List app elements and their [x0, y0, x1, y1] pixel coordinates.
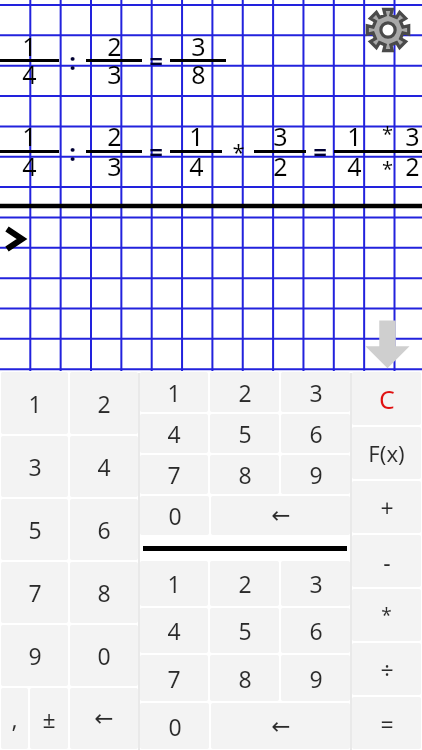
button[interactable]: 3 — [281, 372, 350, 412]
button[interactable]: 9 — [1, 625, 68, 686]
staticText: * — [232, 136, 245, 166]
staticText: 3 — [309, 377, 323, 408]
staticText: 1 — [167, 568, 181, 599]
staticText: 4 — [189, 149, 204, 183]
button[interactable]: 2 — [210, 372, 279, 412]
button[interactable]: 2 — [70, 372, 138, 434]
staticText: 1 — [22, 29, 37, 63]
staticText: 2 — [107, 119, 122, 153]
staticText: * — [382, 120, 394, 147]
button[interactable]: 3 — [281, 561, 350, 606]
button[interactable]: 5 — [1, 499, 68, 560]
staticText: * — [382, 155, 394, 182]
button[interactable]: 7 — [1, 562, 68, 623]
button[interactable]: - — [352, 535, 421, 587]
staticText: 3 — [107, 57, 122, 91]
staticText: 3 — [405, 119, 420, 153]
staticText: 1 — [347, 119, 362, 153]
button[interactable]: ± — [30, 688, 68, 749]
staticText: 7 — [167, 663, 181, 694]
staticText: ← — [94, 705, 114, 732]
staticText: 3 — [309, 568, 323, 599]
staticText: 4 — [97, 451, 111, 482]
button[interactable]: 6 — [281, 608, 350, 653]
button[interactable]: 7 — [140, 455, 208, 494]
staticText: 4 — [167, 418, 181, 449]
button[interactable]: 1 — [140, 372, 208, 412]
staticText: 0 — [168, 711, 182, 742]
staticText: 5 — [238, 418, 252, 449]
button[interactable]: 3 — [1, 436, 68, 497]
button[interactable]: , — [1, 688, 28, 749]
staticText: 1 — [22, 119, 37, 153]
staticText: 4 — [347, 149, 362, 183]
button[interactable]: 4 — [140, 608, 208, 653]
button[interactable]: Scroll down — [360, 316, 415, 371]
button[interactable]: Backspace — [70, 688, 138, 749]
staticText: , — [11, 703, 18, 734]
button[interactable]: 9 — [281, 455, 350, 494]
button[interactable]: 4 — [70, 436, 138, 497]
staticText: 9 — [309, 459, 323, 490]
button[interactable]: 5 — [210, 414, 279, 453]
button[interactable]: = — [352, 697, 421, 749]
button[interactable]: Settings — [362, 4, 414, 56]
staticText: 8 — [97, 577, 111, 608]
staticText: 2 — [405, 149, 420, 183]
staticText: : — [69, 44, 76, 77]
button[interactable]: 6 — [70, 499, 138, 560]
staticText: 5 — [28, 514, 42, 545]
button[interactable]: 5 — [210, 608, 279, 653]
staticText: C — [379, 382, 395, 416]
button[interactable]: 1 — [1, 372, 68, 434]
button[interactable]: C — [352, 372, 421, 425]
button[interactable]: * — [352, 589, 421, 641]
button[interactable]: 0 — [140, 703, 209, 749]
staticText: ← — [271, 713, 291, 740]
staticText: 3 — [191, 29, 206, 63]
staticText: 7 — [28, 577, 42, 608]
staticText: 8 — [191, 57, 206, 91]
staticText: 9 — [309, 663, 323, 694]
staticText: - — [383, 546, 391, 577]
staticText: 1 — [28, 388, 42, 419]
staticText: 8 — [238, 459, 252, 490]
staticText: 2 — [97, 388, 111, 419]
button[interactable]: 8 — [210, 655, 279, 701]
button[interactable]: 2 — [210, 561, 279, 606]
staticText: 2 — [238, 568, 252, 599]
staticText: : — [69, 135, 76, 168]
button[interactable]: 8 — [210, 455, 279, 494]
staticText: 5 — [238, 615, 252, 646]
staticText: 9 — [28, 640, 42, 671]
staticText: ÷ — [380, 654, 394, 685]
button[interactable]: ÷ — [352, 643, 421, 695]
button[interactable]: Backspace denominator — [211, 703, 350, 749]
staticText: 8 — [238, 663, 252, 694]
button[interactable]: F(x) — [352, 427, 421, 479]
staticText: 3 — [107, 149, 122, 183]
staticText: = — [149, 135, 163, 168]
button[interactable]: 0 — [140, 496, 209, 535]
staticText: 2 — [273, 149, 288, 183]
button[interactable]: 4 — [140, 414, 208, 453]
staticText: 6 — [309, 615, 323, 646]
button[interactable]: 0 — [70, 625, 138, 686]
staticText: * — [381, 602, 392, 628]
button[interactable]: 7 — [140, 655, 208, 701]
staticText: 6 — [97, 514, 111, 545]
button[interactable]: Backspace numerator — [211, 496, 350, 535]
staticText: F(x) — [368, 438, 405, 468]
button[interactable]: + — [352, 481, 421, 533]
staticText: 0 — [97, 640, 111, 671]
staticText: = — [380, 708, 394, 739]
button[interactable]: 8 — [70, 562, 138, 623]
button[interactable]: 6 — [281, 414, 350, 453]
staticText: 1 — [189, 119, 204, 153]
staticText: ± — [42, 703, 56, 734]
staticText: = — [149, 44, 163, 77]
button[interactable]: 1 — [140, 561, 208, 606]
staticText: 2 — [238, 377, 252, 408]
staticText: 7 — [167, 459, 181, 490]
button[interactable]: 9 — [281, 655, 350, 701]
